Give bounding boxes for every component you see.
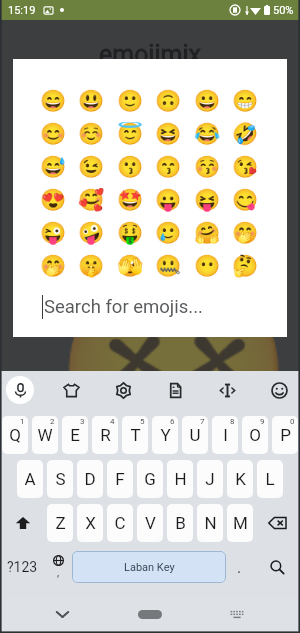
staticText: Search for emojis... — [44, 296, 203, 318]
button[interactable]: Z — [47, 504, 73, 542]
button[interactable]: Voice input — [6, 376, 34, 404]
button[interactable]: 😄 — [37, 85, 69, 117]
button[interactable]: Shift — [0, 501, 45, 545]
button[interactable]: 😁 — [229, 85, 261, 117]
button[interactable]: P — [272, 416, 298, 454]
button[interactable]: 😚 — [191, 151, 223, 183]
staticText: A — [24, 469, 36, 489]
staticText: 6 — [170, 417, 175, 426]
button[interactable]: ?123 — [0, 545, 45, 589]
button[interactable]: J — [197, 460, 223, 498]
button[interactable]: Backspace — [255, 501, 300, 545]
staticText: S — [55, 469, 66, 489]
staticText: 🙃 — [155, 89, 182, 114]
button[interactable]: 😜 — [37, 217, 69, 249]
button[interactable]: O — [242, 416, 268, 454]
button[interactable]: 🤪 — [75, 217, 107, 249]
button[interactable]: 😀 — [191, 85, 223, 117]
button[interactable]: 😝 — [191, 184, 223, 216]
button[interactable]: 😇 — [114, 118, 146, 150]
staticText: 😛 — [155, 188, 182, 213]
button[interactable]: Clipboard — [160, 375, 190, 405]
button[interactable]: W — [32, 416, 58, 454]
staticText: 😜 — [40, 221, 67, 246]
button[interactable]: 😉 — [75, 151, 107, 183]
button[interactable]: 😋 — [229, 184, 261, 216]
button[interactable]: Y — [152, 416, 178, 454]
button[interactable]: T — [122, 416, 148, 454]
button[interactable]: 😃 — [75, 85, 107, 117]
staticText: H — [174, 469, 187, 489]
staticText: Laban Key — [124, 561, 175, 574]
button[interactable]: Move cursor — [212, 375, 242, 405]
button[interactable]: 😅 — [37, 151, 69, 183]
button[interactable]: Settings — [108, 375, 138, 405]
button[interactable]: Home — [134, 598, 166, 630]
button[interactable]: K — [227, 460, 253, 498]
button[interactable]: Hide keyboard — [46, 598, 78, 630]
button[interactable]: 🤔 — [229, 250, 261, 282]
staticText: 5 — [140, 417, 145, 426]
button[interactable]: I — [212, 416, 238, 454]
button[interactable]: V — [137, 504, 163, 542]
button[interactable]: X — [77, 504, 103, 542]
button[interactable]: U — [182, 416, 208, 454]
button[interactable]: . — [226, 545, 253, 589]
button[interactable]: 🙂 — [114, 85, 146, 117]
button[interactable]: 🥲 — [152, 217, 184, 249]
button[interactable]: 🤐 — [152, 250, 184, 282]
button[interactable]: G — [137, 460, 163, 498]
button[interactable]: L — [257, 460, 283, 498]
button[interactable]: 🤣 — [229, 118, 261, 150]
button[interactable]: 😘 — [229, 151, 261, 183]
button[interactable]: 😛 — [152, 184, 184, 216]
button[interactable]: 😍 — [37, 184, 69, 216]
staticText: 😊 — [40, 122, 67, 147]
button[interactable]: E — [62, 416, 88, 454]
button[interactable]: Stickers — [56, 375, 86, 405]
button[interactable]: 😶 — [191, 250, 223, 282]
button[interactable]: A — [17, 460, 43, 498]
button[interactable]: Laban Key — [72, 551, 226, 583]
button[interactable]: D — [77, 460, 103, 498]
button[interactable]: 🫣 — [114, 250, 146, 282]
button[interactable]: Switch keyboard — [221, 598, 253, 630]
button[interactable]: N — [197, 504, 223, 542]
staticText: 😂 — [194, 122, 221, 147]
button[interactable]: Search for emojis... — [42, 287, 287, 327]
button[interactable]: C — [107, 504, 133, 542]
button[interactable]: Emoji — [264, 375, 294, 405]
staticText: 🫣 — [117, 254, 144, 279]
button[interactable]: 😙 — [152, 151, 184, 183]
staticText: ☺️ — [78, 122, 105, 147]
staticText: emojimix — [0, 40, 300, 69]
button[interactable]: M — [227, 504, 253, 542]
button[interactable]: Switch language — [45, 545, 72, 589]
button[interactable]: S — [47, 460, 73, 498]
button[interactable]: 🤗 — [191, 217, 223, 249]
button[interactable]: Q — [2, 416, 28, 454]
button[interactable]: 🥰 — [75, 184, 107, 216]
staticText: 😚 — [194, 155, 221, 180]
button[interactable]: 🤩 — [114, 184, 146, 216]
staticText: 😋 — [232, 188, 259, 213]
button[interactable]: 🤭 — [229, 217, 261, 249]
button[interactable]: 🤑 — [114, 217, 146, 249]
staticText: W — [37, 425, 53, 445]
button[interactable]: 😊 — [37, 118, 69, 150]
button[interactable]: 🤫 — [75, 250, 107, 282]
button[interactable]: H — [167, 460, 193, 498]
staticText: N — [204, 513, 217, 533]
button[interactable]: B — [167, 504, 193, 542]
button[interactable]: 😆 — [152, 118, 184, 150]
button[interactable]: 🤭 — [37, 250, 69, 282]
button[interactable]: F — [107, 460, 133, 498]
staticText: 😝 — [194, 188, 221, 213]
button[interactable]: 😗 — [114, 151, 146, 183]
button[interactable]: 🙃 — [152, 85, 184, 117]
button[interactable]: Search — [253, 545, 300, 589]
button[interactable]: ☺️ — [75, 118, 107, 150]
button[interactable]: 😂 — [191, 118, 223, 150]
button[interactable]: R — [92, 416, 118, 454]
staticText: 🤩 — [117, 188, 144, 213]
